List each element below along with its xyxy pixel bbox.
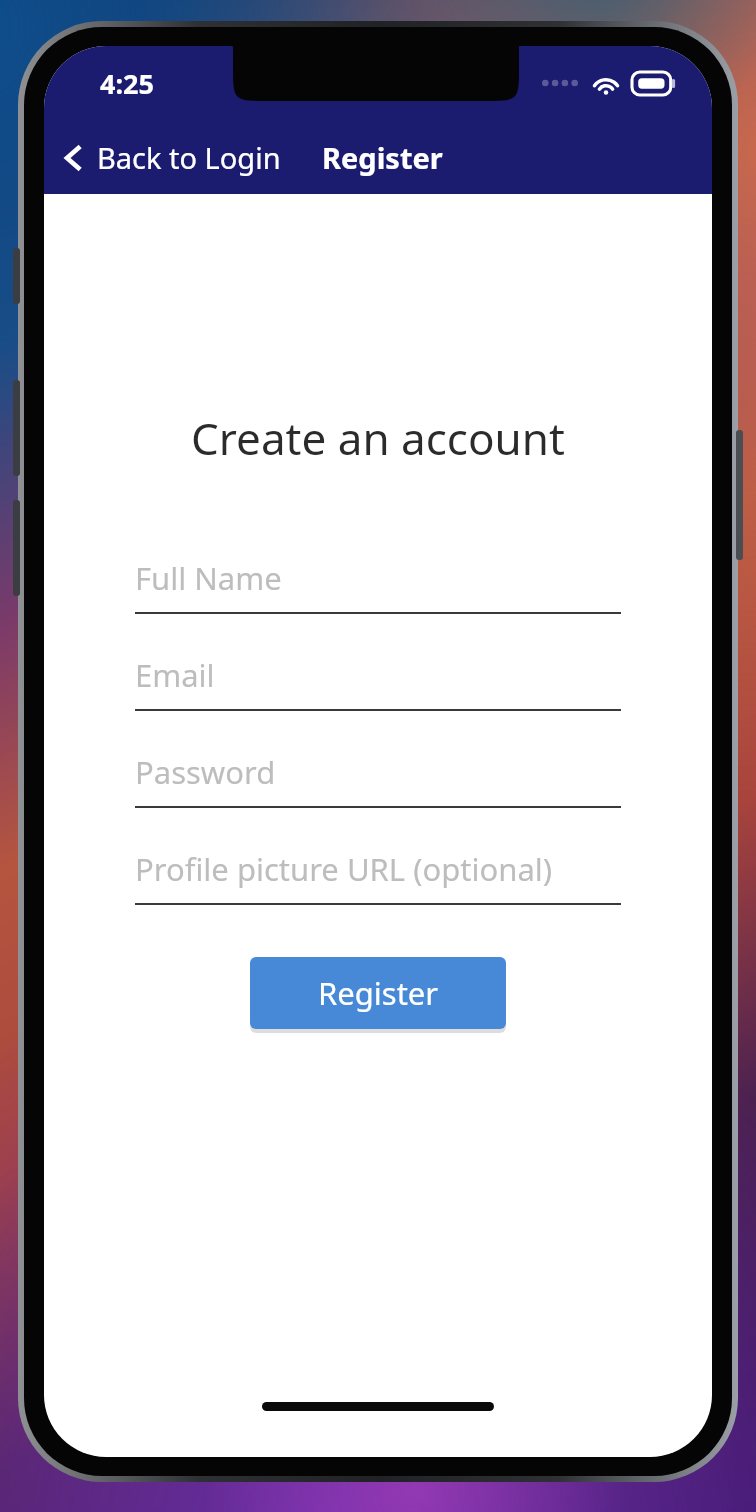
button[interactable]: Profile picture URL (optional)	[135, 848, 621, 905]
staticText: Register	[322, 138, 443, 177]
staticText: Create an account	[191, 408, 565, 468]
staticText: Register	[318, 972, 439, 1014]
button[interactable]: Password	[135, 751, 621, 808]
staticText: Back to Login	[97, 138, 281, 177]
button[interactable]: Register	[250, 957, 506, 1029]
staticText: Email	[135, 654, 215, 696]
staticText: Profile picture URL (optional)	[135, 848, 553, 890]
button[interactable]: Back to Login	[44, 130, 291, 185]
button[interactable]: Email	[135, 654, 621, 711]
staticText: Password	[135, 751, 276, 793]
staticText: 4:25	[100, 65, 154, 102]
staticText: Full Name	[135, 557, 282, 599]
button[interactable]: Register	[318, 130, 447, 185]
button[interactable]: Full Name	[135, 557, 621, 614]
other: Back to Login	[58, 143, 88, 173]
